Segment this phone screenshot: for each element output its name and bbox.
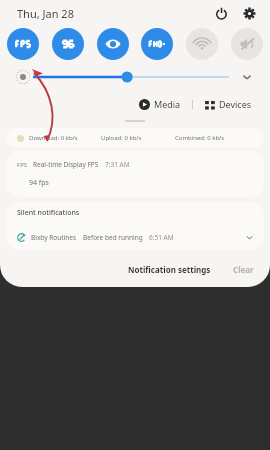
button[interactable]: Power xyxy=(210,2,232,24)
button[interactable]: Devices xyxy=(200,98,256,110)
button[interactable]: Bixby Routines xyxy=(6,224,264,250)
button[interactable]: Wi-Fi xyxy=(186,28,218,60)
button[interactable]: Thu, Jan 28 xyxy=(17,6,74,21)
staticText: Upload: 0 kb/s xyxy=(101,134,175,142)
button[interactable]: Brightness xyxy=(33,68,229,86)
button[interactable]: Mute xyxy=(231,28,263,60)
staticText: Bixby Routines xyxy=(31,233,77,242)
button[interactable]: 96 Hz refresh rate xyxy=(52,28,84,60)
staticText: Real-time Display FPS xyxy=(33,160,99,169)
button[interactable]: FHD resolution xyxy=(141,28,173,60)
staticText: Notification settings xyxy=(128,264,211,275)
staticText: Silent notifications xyxy=(17,208,80,218)
staticText: Clear xyxy=(233,264,254,275)
button[interactable]: FPS xyxy=(6,151,264,197)
staticText: FPS xyxy=(17,161,28,169)
button[interactable]: Clear xyxy=(227,261,260,278)
button[interactable]: Auto brightness xyxy=(12,66,34,88)
staticText: 94 fps xyxy=(29,178,49,188)
staticText: Media xyxy=(154,98,181,110)
button[interactable]: Silent notifications xyxy=(6,202,264,224)
staticText: Download: 0 kb/s xyxy=(29,134,101,142)
button[interactable]: Download: 0 kb/s xyxy=(6,128,264,147)
button[interactable]: Expand xyxy=(236,66,258,88)
button[interactable]: Media xyxy=(135,98,185,110)
staticText: Before bed running xyxy=(83,233,143,242)
staticText: 6:51 AM xyxy=(149,233,174,242)
staticText: Devices xyxy=(219,98,252,110)
button[interactable]: Notification settings xyxy=(122,261,217,278)
staticText: 7:31 AM xyxy=(105,160,130,169)
staticText: Combined: 0 kb/s xyxy=(175,134,225,142)
button[interactable]: Eye comfort shield xyxy=(97,28,129,60)
button[interactable]: FPS toggle xyxy=(7,28,39,60)
button[interactable]: Settings xyxy=(238,2,260,24)
